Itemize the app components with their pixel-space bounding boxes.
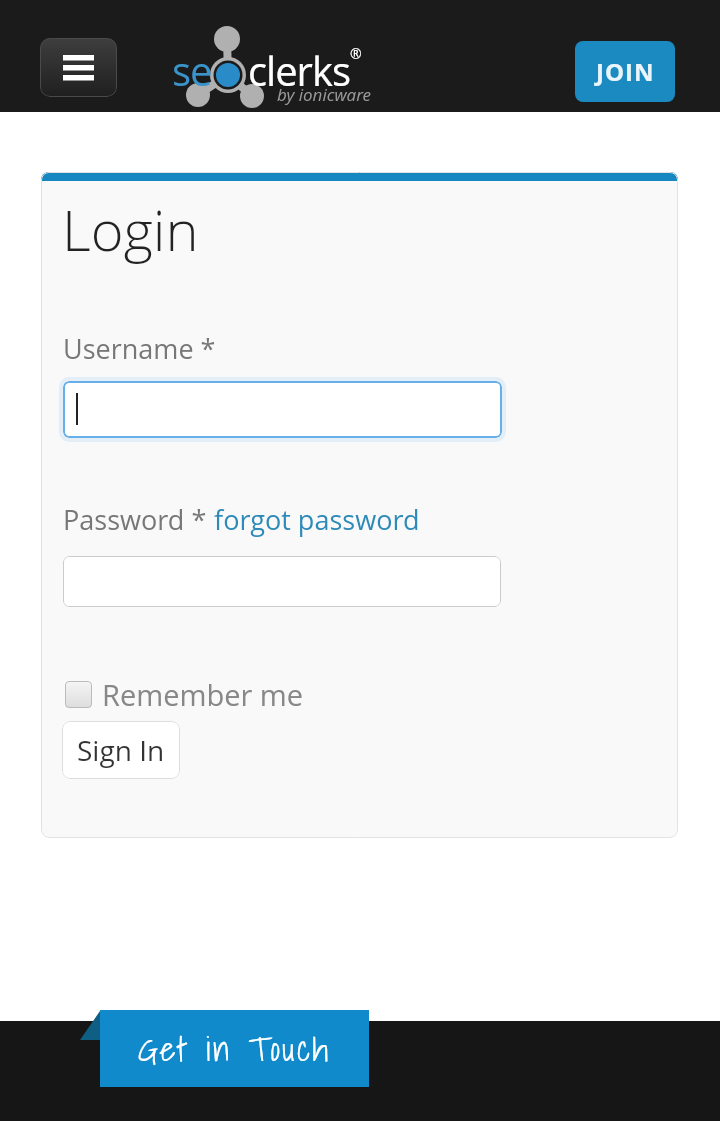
button[interactable] [40, 38, 117, 97]
staticText: by ionicware [277, 83, 371, 106]
staticText: Remember me [102, 675, 304, 714]
button[interactable]: Sign In [62, 721, 180, 779]
staticText: se [172, 43, 212, 97]
staticText: Get in Touch [138, 1021, 331, 1076]
button[interactable]: Get in Touch [100, 1010, 369, 1087]
staticText: Sign In [77, 731, 165, 769]
button[interactable] [63, 556, 501, 607]
staticText: ® [350, 44, 362, 63]
staticText: Username * [63, 330, 216, 367]
button[interactable] [63, 381, 502, 438]
staticText: Password * [63, 501, 214, 538]
button[interactable]: JOIN [575, 41, 675, 102]
staticText: Login [62, 191, 199, 267]
button[interactable]: forgot password [214, 501, 420, 538]
staticText: JOIN [596, 55, 655, 88]
staticText: clerks [248, 43, 351, 97]
button[interactable]: Remember me [65, 675, 304, 714]
